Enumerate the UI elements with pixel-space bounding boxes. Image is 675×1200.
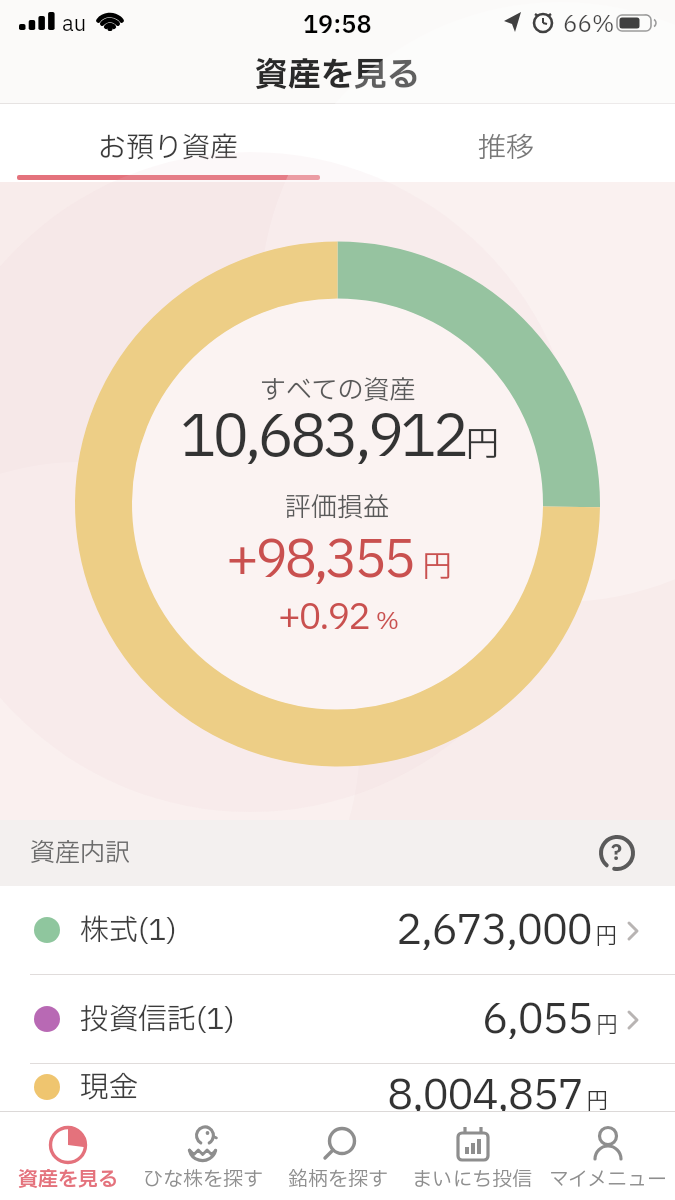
staticText: ひな株を探す	[143, 1165, 263, 1195]
staticText: 10,683,912円	[180, 395, 496, 482]
button[interactable]	[599, 835, 635, 871]
staticText: お預り資産	[98, 127, 239, 169]
staticText: 現金	[80, 1066, 139, 1109]
button[interactable]: 株式(1)	[0, 886, 675, 974]
staticText: 資産を見る	[18, 1165, 118, 1195]
staticText: 評価損益	[285, 488, 390, 527]
staticText: 銘柄を探す	[288, 1165, 388, 1195]
button[interactable]: お預り資産	[0, 104, 337, 182]
staticText: 資産内訳	[30, 835, 131, 872]
staticText: ?	[611, 838, 623, 869]
button[interactable]: ひな株を探す	[135, 1112, 270, 1200]
staticText: マイメニュー	[549, 1165, 667, 1195]
staticText: 株式(1)	[80, 909, 177, 952]
button[interactable]: 投資信託(1)	[0, 975, 675, 1063]
staticText: 資産を見る	[255, 51, 420, 100]
staticText: 推移	[478, 127, 535, 169]
button[interactable]: 資産を見る	[0, 1112, 135, 1200]
button[interactable]: まいにち投信	[405, 1112, 540, 1200]
staticText: 2,673,000 円	[396, 899, 617, 962]
staticText: まいにち投信	[412, 1165, 533, 1195]
button[interactable]: マイメニュー	[540, 1112, 675, 1200]
button[interactable]: 推移	[337, 104, 675, 182]
button[interactable]: 現金	[0, 1064, 675, 1111]
staticText: +0.92 %	[278, 591, 398, 645]
staticText: au	[62, 9, 87, 40]
staticText: 6,055 円	[482, 988, 617, 1051]
staticText: 投資信託(1)	[80, 998, 235, 1041]
button[interactable]: 銘柄を探す	[270, 1112, 405, 1200]
staticText: 66%	[563, 8, 615, 42]
staticText: 8,004,857 円	[387, 1064, 608, 1111]
staticText: +98,355 円	[226, 522, 449, 600]
staticText: 19:58	[303, 8, 372, 44]
staticText: すべての資産	[260, 371, 416, 410]
